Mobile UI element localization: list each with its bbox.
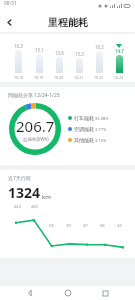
button[interactable]: Back — [0, 13, 18, 31]
staticText: 87 — [83, 223, 88, 228]
staticText: 10-20 — [54, 75, 64, 80]
staticText: 14.7 — [115, 48, 124, 54]
staticText: 10-21 — [74, 75, 84, 80]
staticText: 99 — [66, 223, 71, 228]
button[interactable]: Home — [61, 286, 75, 300]
staticText: 09:31 — [4, 0, 17, 7]
staticText: 1324 — [8, 183, 41, 202]
staticText: 93.08% — [95, 116, 109, 121]
button[interactable]: Recents — [98, 286, 112, 300]
staticText: 近7天行程 — [8, 175, 31, 182]
staticText: 86 — [100, 223, 105, 228]
button[interactable]: 周能耗分享 12/24-1/23 — [0, 87, 135, 165]
staticText: 485 — [31, 204, 38, 209]
staticText: 16.3 — [14, 43, 23, 49]
staticText: 3.77% — [95, 127, 107, 132]
staticText: 3.15% — [95, 138, 107, 143]
staticText: 10-22 — [94, 75, 104, 80]
staticText: 10-23 — [114, 75, 124, 80]
staticText: 65 — [49, 223, 54, 228]
staticText: 10-19 — [34, 75, 44, 80]
button[interactable]: Back — [23, 286, 37, 300]
button[interactable]: 16.3 — [0, 34, 135, 82]
staticText: 其他能耗 — [74, 137, 94, 143]
staticText: 总能耗(kWh) — [23, 136, 49, 142]
staticText: 空调能耗 — [74, 126, 94, 132]
staticText: 13.3 — [75, 51, 84, 57]
staticText: km — [42, 193, 51, 201]
button[interactable]: 近7天行程 — [0, 170, 135, 258]
staticText: 行车能耗 — [74, 115, 94, 121]
staticText: 16.2 — [95, 44, 104, 50]
staticText: 15.1 — [35, 47, 44, 53]
staticText: 10-18 — [14, 75, 24, 80]
staticText: 13.6 — [55, 50, 64, 56]
staticText: 里程能耗 — [48, 16, 88, 29]
staticText: 周能耗分享 12/24-1/23 — [8, 92, 60, 99]
staticText: 206.7 — [16, 116, 55, 136]
staticText: 443 — [14, 204, 21, 209]
staticText: 42 — [117, 223, 122, 228]
